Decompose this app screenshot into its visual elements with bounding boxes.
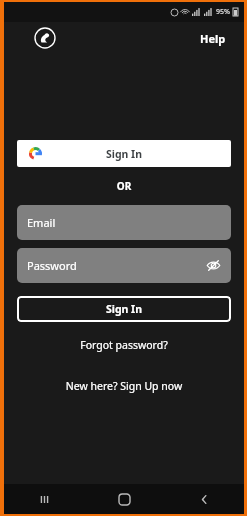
button[interactable]: Home (84, 484, 164, 514)
staticText: OR (4, 179, 244, 193)
staticText: Help (200, 31, 226, 46)
button[interactable]: App logo (34, 27, 56, 49)
button[interactable]: New here? Sign Up now (4, 379, 244, 393)
button[interactable]: Recent apps (4, 484, 84, 514)
staticText: Email (27, 215, 56, 230)
staticText: Sign In (106, 302, 143, 316)
button[interactable]: Password (17, 248, 231, 283)
staticText: Password (27, 258, 77, 273)
button[interactable]: Sign In (17, 140, 231, 167)
button[interactable]: Sign In (17, 296, 231, 322)
button[interactable]: Back (164, 484, 244, 514)
button[interactable]: Email (17, 205, 231, 240)
staticText: Sign In (106, 147, 143, 161)
button[interactable]: Forgot password? (4, 338, 244, 352)
button[interactable]: Help (196, 27, 230, 50)
staticText: 95% (216, 7, 230, 17)
button[interactable]: Toggle password visibility (206, 258, 221, 273)
